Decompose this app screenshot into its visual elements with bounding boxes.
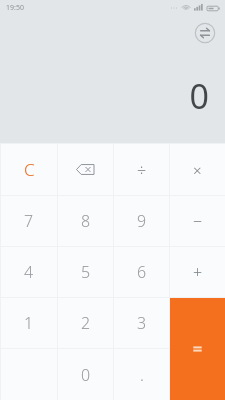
staticText: 0 bbox=[81, 364, 91, 386]
button[interactable]: 0 bbox=[58, 349, 113, 400]
button[interactable]: 1 bbox=[1, 298, 57, 348]
button[interactable]: 3 bbox=[114, 298, 169, 348]
staticText: . bbox=[140, 364, 144, 386]
button[interactable]: 2 bbox=[58, 298, 113, 348]
staticText: 9 bbox=[137, 210, 147, 232]
staticText: × bbox=[193, 160, 202, 180]
staticText: − bbox=[193, 210, 203, 232]
staticText: 4 bbox=[24, 261, 34, 283]
staticText: 0 bbox=[189, 73, 209, 119]
staticText: 3 bbox=[137, 312, 147, 334]
button[interactable]: Equals bbox=[170, 298, 225, 400]
button[interactable]: 7 bbox=[1, 196, 57, 246]
button[interactable]: C bbox=[1, 144, 57, 195]
button[interactable]: Backspace bbox=[58, 144, 113, 195]
staticText: 2 bbox=[81, 312, 91, 334]
button[interactable]: 8 bbox=[58, 196, 113, 246]
button[interactable]: 9 bbox=[114, 196, 169, 246]
button[interactable]: 6 bbox=[114, 247, 169, 297]
staticText: 7 bbox=[24, 210, 34, 232]
button[interactable]: + bbox=[170, 247, 225, 297]
button[interactable]: Convert bbox=[194, 22, 216, 44]
button[interactable]: 5 bbox=[58, 247, 113, 297]
staticText: 6 bbox=[137, 261, 147, 283]
button[interactable]: × bbox=[170, 144, 225, 195]
staticText: 5 bbox=[81, 261, 91, 283]
button[interactable]: ÷ bbox=[114, 144, 169, 195]
button[interactable]: 4 bbox=[1, 247, 57, 297]
staticText: 1 bbox=[24, 312, 34, 334]
staticText: + bbox=[193, 261, 203, 283]
button[interactable]: − bbox=[170, 196, 225, 246]
staticText: ÷ bbox=[137, 159, 147, 181]
staticText: 8 bbox=[81, 210, 91, 232]
staticText: C bbox=[24, 158, 35, 181]
staticText: 19:50 bbox=[6, 3, 24, 13]
